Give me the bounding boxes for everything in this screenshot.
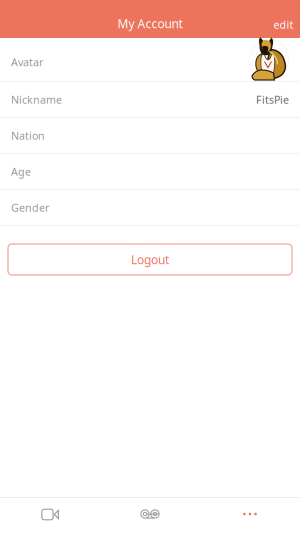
staticText: Age [11, 164, 31, 179]
button[interactable]: Age [0, 154, 300, 189]
staticText: Nation [11, 128, 45, 143]
staticText: Nickname [11, 92, 62, 107]
button[interactable]: Video [0, 498, 100, 533]
staticText: FitsPie [256, 92, 289, 107]
staticText: My Account [117, 15, 182, 31]
button[interactable]: Nation [0, 118, 300, 153]
button[interactable]: Recordings [100, 498, 200, 533]
button[interactable]: Avatar [0, 38, 300, 81]
button[interactable]: edit [267, 0, 300, 38]
button[interactable]: Logout [8, 244, 292, 275]
button[interactable]: Gender [0, 190, 300, 225]
button[interactable]: Nickname [0, 82, 300, 117]
staticText: Logout [131, 251, 169, 267]
staticText: edit [273, 17, 293, 32]
staticText: Avatar [11, 55, 43, 69]
staticText: Gender [11, 200, 49, 215]
button[interactable]: More [200, 498, 300, 533]
